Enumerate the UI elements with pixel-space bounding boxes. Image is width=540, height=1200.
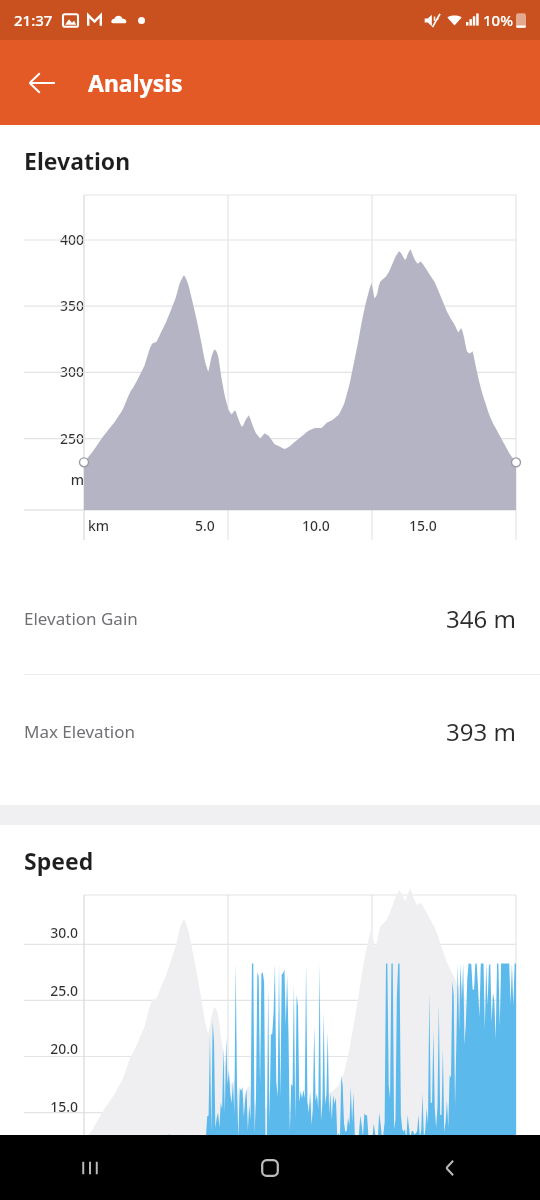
- button[interactable]: Home: [180, 1135, 360, 1200]
- button[interactable]: Back: [360, 1135, 540, 1200]
- staticText: 393 m: [446, 715, 516, 748]
- button[interactable]: Recent apps: [0, 1135, 180, 1200]
- staticText: Analysis: [88, 67, 183, 98]
- staticText: Max Elevation: [24, 720, 135, 743]
- staticText: 21:37: [14, 10, 53, 30]
- staticText: 350: [0, 296, 84, 315]
- staticText: 10%: [483, 10, 513, 30]
- staticText: 346 m: [446, 602, 516, 635]
- staticText: 5.0: [195, 516, 302, 535]
- button[interactable]: Elevation Gain: [0, 562, 540, 674]
- staticText: Elevation Gain: [24, 607, 138, 630]
- staticText: 15.0: [409, 516, 516, 535]
- button[interactable]: Back: [10, 51, 74, 115]
- staticText: 30.0: [0, 923, 78, 942]
- staticText: km: [88, 516, 195, 535]
- staticText: Speed: [24, 845, 94, 876]
- staticText: Elevation: [24, 145, 131, 176]
- staticText: 20.0: [0, 1039, 78, 1058]
- staticText: 15.0: [0, 1097, 78, 1116]
- staticText: 300: [0, 362, 84, 381]
- staticText: m: [0, 470, 84, 489]
- staticText: 10.0: [302, 516, 409, 535]
- staticText: 25.0: [0, 981, 78, 1000]
- staticText: 400: [0, 230, 84, 249]
- button[interactable]: Max Elevation: [0, 675, 540, 787]
- staticText: 250: [0, 429, 84, 448]
